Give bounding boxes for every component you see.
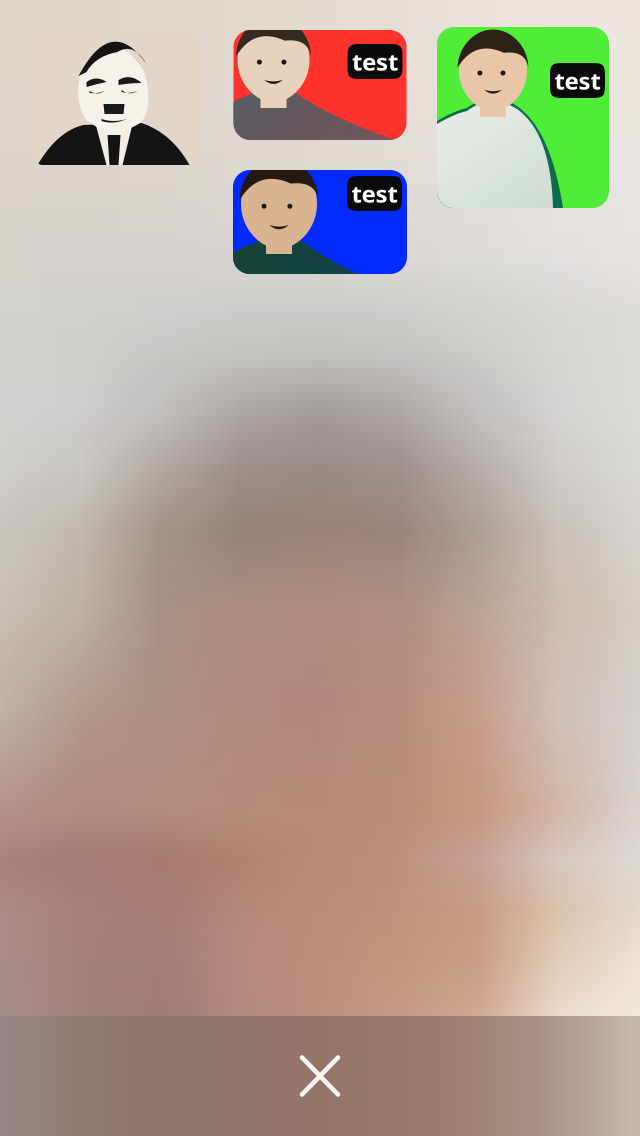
button[interactable]: Sticker bbox=[30, 30, 201, 166]
button[interactable]: Sticker bbox=[233, 170, 407, 274]
button[interactable]: Sticker bbox=[233, 30, 406, 140]
staticText: test bbox=[554, 65, 600, 96]
staticText: test bbox=[352, 46, 398, 77]
button[interactable]: Sticker bbox=[437, 27, 609, 208]
button[interactable]: Close bbox=[0, 1016, 640, 1136]
staticText: test bbox=[351, 178, 397, 209]
